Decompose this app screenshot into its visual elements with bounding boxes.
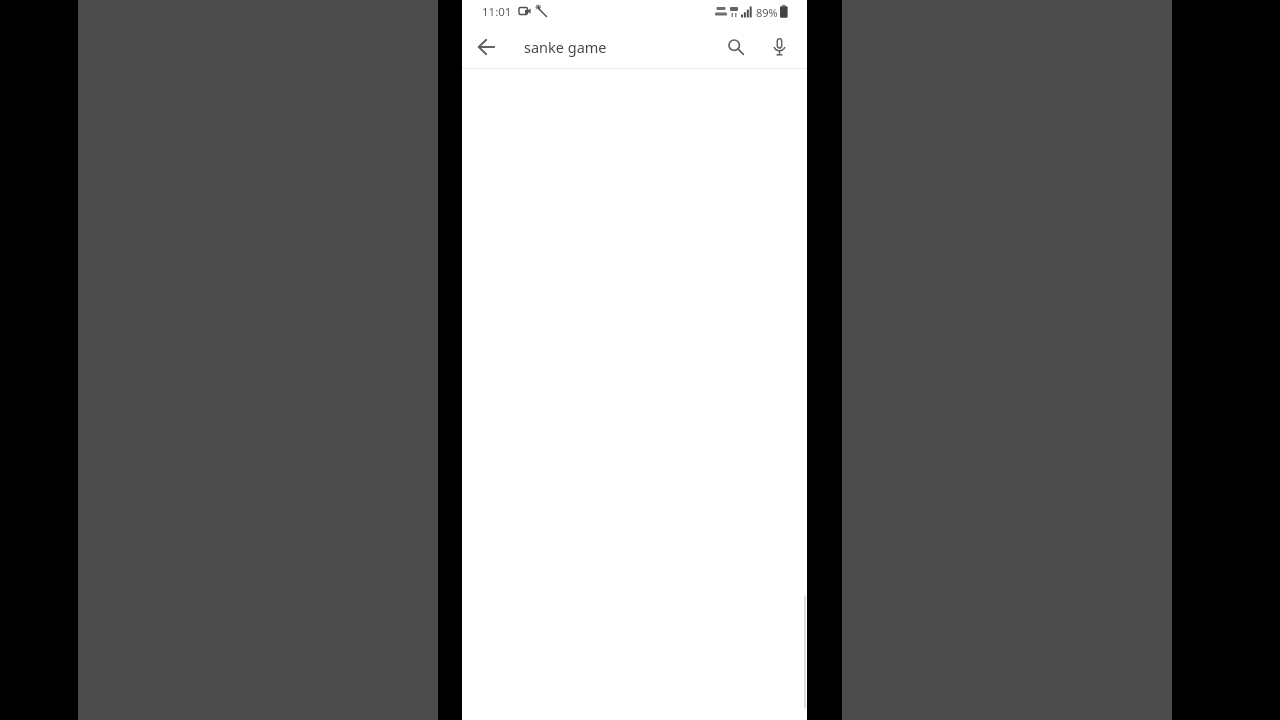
- staticText: 89%: [756, 5, 778, 20]
- button[interactable]: [762, 30, 796, 64]
- button[interactable]: [719, 30, 753, 64]
- button[interactable]: [469, 30, 503, 64]
- staticText: 11:01: [482, 4, 512, 20]
- staticText: sanke game: [524, 37, 607, 57]
